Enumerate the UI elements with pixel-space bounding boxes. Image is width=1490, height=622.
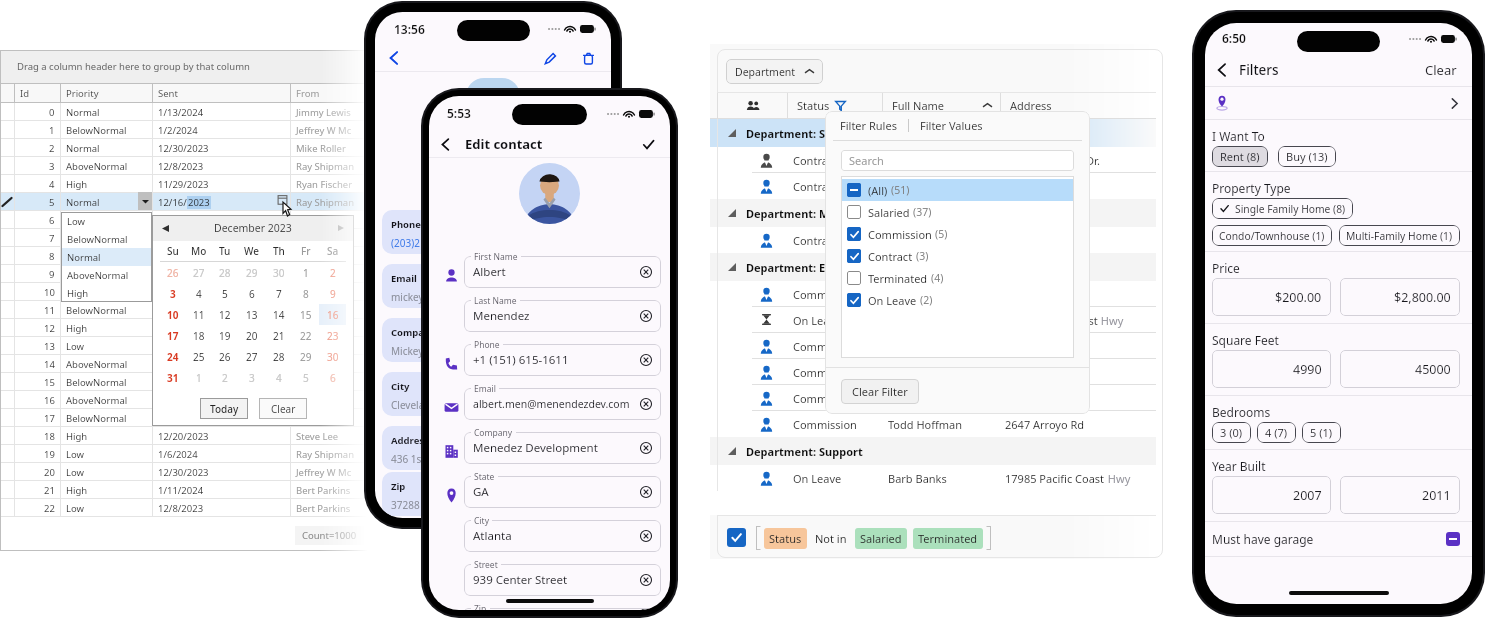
button[interactable]: 9 xyxy=(319,283,346,304)
button[interactable]: 31 xyxy=(160,367,186,388)
button[interactable]: $2,800.00 xyxy=(1340,278,1460,316)
button[interactable]: 4 xyxy=(265,367,292,388)
button[interactable]: BelowNormal xyxy=(61,230,152,248)
button[interactable]: Phone xyxy=(391,218,452,254)
button[interactable]: Contract xyxy=(710,173,1156,199)
button[interactable]: 10 xyxy=(160,304,186,325)
button[interactable]: 3 (0) xyxy=(1220,422,1243,443)
button[interactable]: albert.men@menendezdev.com xyxy=(464,388,661,420)
button[interactable]: 8 xyxy=(292,283,319,304)
button[interactable]: Department: Engineering xyxy=(710,253,1156,281)
button[interactable]: Contract xyxy=(710,227,1156,253)
button[interactable]: 939 Center Street xyxy=(464,564,661,596)
button[interactable]: 4 (7) xyxy=(1265,422,1288,443)
button[interactable]: 15 xyxy=(0,373,368,391)
button[interactable]: Search xyxy=(841,150,1074,171)
button[interactable]: 26 xyxy=(212,346,238,367)
button[interactable]: Condo/Townhouse (1) xyxy=(1219,225,1325,246)
button[interactable]: Rent (8) xyxy=(1220,146,1260,167)
button[interactable]: Commission xyxy=(710,333,1156,359)
button[interactable]: 23 xyxy=(319,325,346,346)
button[interactable]: Normal xyxy=(61,248,152,266)
button[interactable]: Back xyxy=(387,48,407,68)
button[interactable]: 7 xyxy=(265,283,292,304)
button[interactable]: 8 xyxy=(0,247,368,265)
button[interactable]: Multi-Family Home (1) xyxy=(1346,225,1453,246)
button[interactable]: Low xyxy=(61,212,152,230)
button[interactable]: 30 xyxy=(319,346,346,367)
button[interactable]: Clear xyxy=(1422,58,1460,82)
button[interactable]: 14 xyxy=(0,355,368,373)
button[interactable]: Contract xyxy=(847,245,1074,267)
button[interactable]: High xyxy=(61,284,152,302)
button[interactable]: Company xyxy=(391,326,452,362)
button[interactable]: Must have garage xyxy=(1212,522,1460,556)
button[interactable]: 5 xyxy=(292,367,319,388)
button[interactable]: 3 xyxy=(160,283,186,304)
button[interactable]: Open priority list xyxy=(138,192,152,210)
button[interactable]: 45000 xyxy=(1340,350,1460,388)
button[interactable]: 12 xyxy=(0,319,368,337)
button[interactable]: Department: Sales xyxy=(710,119,1156,147)
button[interactable]: 27 xyxy=(186,262,212,283)
button[interactable]: Back xyxy=(1211,59,1233,81)
button[interactable]: 1 xyxy=(292,262,319,283)
button[interactable]: 3 xyxy=(238,367,265,388)
button[interactable]: 1 xyxy=(186,367,212,388)
button[interactable]: Delete xyxy=(578,48,598,68)
button[interactable]: Commission xyxy=(710,281,1156,307)
button[interactable]: 5 (1) xyxy=(1310,422,1333,443)
button[interactable]: 4 xyxy=(0,175,368,193)
button[interactable]: Email xyxy=(391,272,452,308)
button[interactable]: Department xyxy=(735,59,814,84)
button[interactable]: 2 xyxy=(319,262,346,283)
button[interactable]: 29 xyxy=(292,346,319,367)
button[interactable]: 0 xyxy=(0,103,368,121)
button[interactable]: 5 xyxy=(0,193,368,211)
button[interactable]: 20 xyxy=(238,325,265,346)
button[interactable]: Previous month xyxy=(156,219,174,237)
button[interactable]: 13 xyxy=(0,337,368,355)
button[interactable]: 28 xyxy=(265,346,292,367)
button[interactable]: On Leave xyxy=(847,289,1074,311)
button[interactable]: 4 xyxy=(186,283,212,304)
button[interactable]: Terminated xyxy=(847,267,1074,289)
button[interactable]: Single Family Home (8) xyxy=(1219,198,1346,219)
button[interactable]: Today xyxy=(200,398,248,419)
button[interactable]: 16 xyxy=(319,304,346,325)
button[interactable]: Clear xyxy=(259,398,307,419)
button[interactable]: Menendez xyxy=(464,300,661,332)
button[interactable]: AboveNormal xyxy=(61,266,152,284)
button[interactable]: Menedez Development xyxy=(464,432,661,464)
button[interactable]: 5 xyxy=(212,283,238,304)
button[interactable]: 7 xyxy=(0,229,368,247)
button[interactable]: 14 xyxy=(265,304,292,325)
button[interactable]: 17 xyxy=(160,325,186,346)
button[interactable]: Contract xyxy=(710,147,1156,173)
button[interactable]: GA xyxy=(464,476,661,508)
button[interactable]: Atlanta xyxy=(464,520,661,552)
button[interactable]: City xyxy=(391,380,452,416)
button[interactable] xyxy=(464,608,661,610)
button[interactable]: 11 xyxy=(186,304,212,325)
button[interactable]: 4990 xyxy=(1212,350,1331,388)
button[interactable]: 2 xyxy=(0,139,368,157)
button[interactable]: 6 xyxy=(238,283,265,304)
button[interactable]: 29 xyxy=(238,262,265,283)
button[interactable]: Address xyxy=(391,434,452,470)
button[interactable]: Filter Rules xyxy=(840,118,897,133)
button[interactable]: Commission xyxy=(847,223,1074,245)
button[interactable]: Edit xyxy=(540,48,560,68)
button[interactable]: Commission xyxy=(710,411,1156,437)
button[interactable]: Back xyxy=(439,135,457,153)
button[interactable]: 17 xyxy=(0,409,368,427)
button[interactable]: On Leave xyxy=(710,307,1156,333)
button[interactable]: Commission xyxy=(710,385,1156,411)
button[interactable]: Status xyxy=(769,531,802,546)
button[interactable]: 22 xyxy=(0,499,368,517)
button[interactable]: 1 xyxy=(0,121,368,139)
button[interactable]: 12 xyxy=(212,304,238,325)
button[interactable]: Department: Marketing xyxy=(710,199,1156,227)
button[interactable]: 3 xyxy=(0,157,368,175)
button[interactable]: 28 xyxy=(212,262,238,283)
